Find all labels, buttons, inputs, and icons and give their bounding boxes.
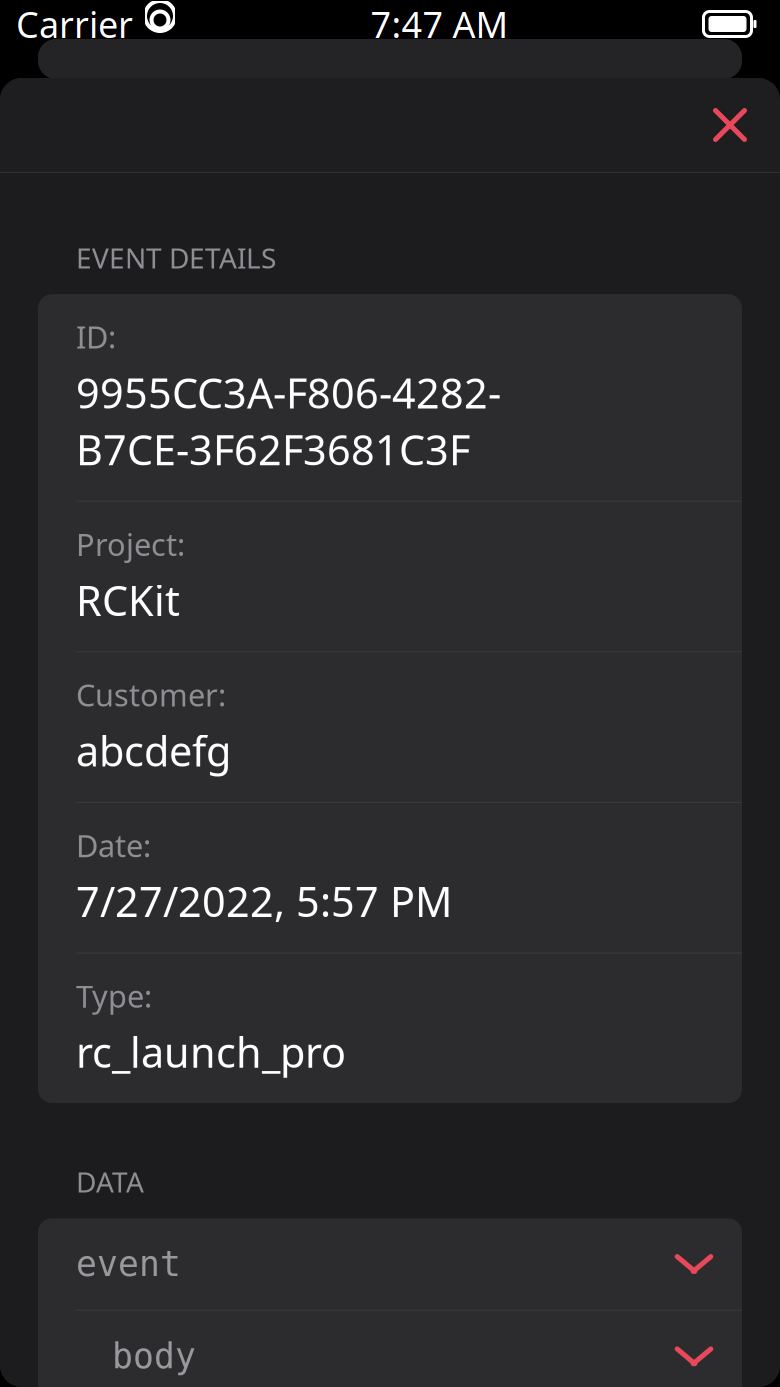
staticText: Carrier: [16, 0, 133, 48]
staticText: Type:: [76, 975, 152, 1016]
staticText: rc_launch_pro: [76, 1024, 346, 1079]
staticText: 7/27/2022, 5:57 PM: [76, 874, 452, 928]
staticText: abcdefg: [76, 723, 231, 778]
staticText: event: [76, 1244, 181, 1284]
staticText: Date:: [76, 825, 151, 866]
staticText: Customer:: [76, 674, 226, 715]
staticText: 7:47 AM: [370, 0, 508, 48]
button[interactable]: Close: [680, 87, 780, 163]
staticText: Project:: [76, 524, 185, 564]
staticText: DATA: [76, 1163, 144, 1200]
staticText: RCKit: [76, 572, 180, 627]
staticText: ID:: [76, 316, 116, 357]
staticText: B7CE-3F62F3681C3F: [76, 422, 470, 477]
staticText: EVENT DETAILS: [76, 239, 276, 276]
button[interactable]: body: [38, 1311, 742, 1387]
staticText: body: [112, 1337, 196, 1376]
staticText: 9955CC3A-F806-4282-: [76, 365, 501, 420]
button[interactable]: event: [38, 1218, 742, 1310]
